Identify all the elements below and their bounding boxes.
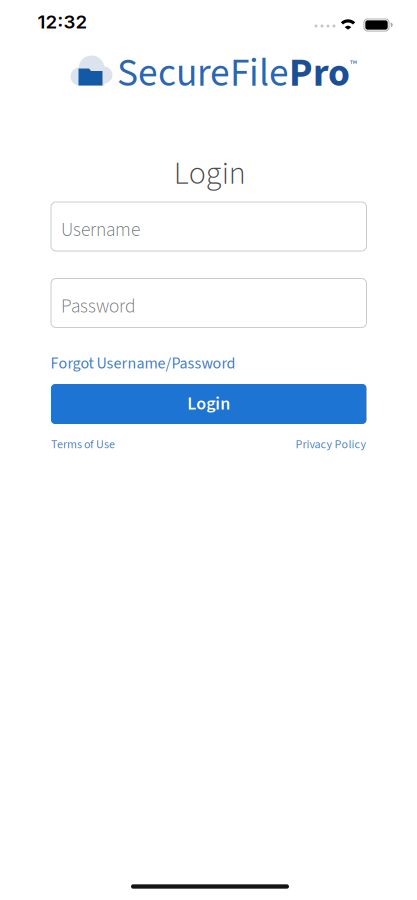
staticText: Pro	[289, 45, 350, 102]
staticText: Terms of Use	[51, 436, 115, 453]
button[interactable]: Login	[51, 384, 366, 424]
staticText: Login	[174, 151, 246, 196]
staticText: Username	[61, 216, 140, 244]
staticText: Password	[61, 293, 136, 320]
button[interactable]: Username	[51, 202, 366, 251]
staticText: 12:32	[37, 10, 87, 33]
staticText: Login	[187, 391, 230, 417]
staticText: Forgot Username/Password	[50, 352, 235, 375]
staticText: SecureFile	[117, 45, 289, 102]
button[interactable]: Password	[51, 278, 366, 327]
staticText: Privacy Policy	[295, 436, 366, 453]
button[interactable]: Forgot Username/Password	[50, 352, 235, 375]
staticText: ™	[350, 57, 357, 72]
button[interactable]: Privacy Policy	[295, 436, 366, 453]
button[interactable]: Terms of Use	[51, 436, 115, 453]
